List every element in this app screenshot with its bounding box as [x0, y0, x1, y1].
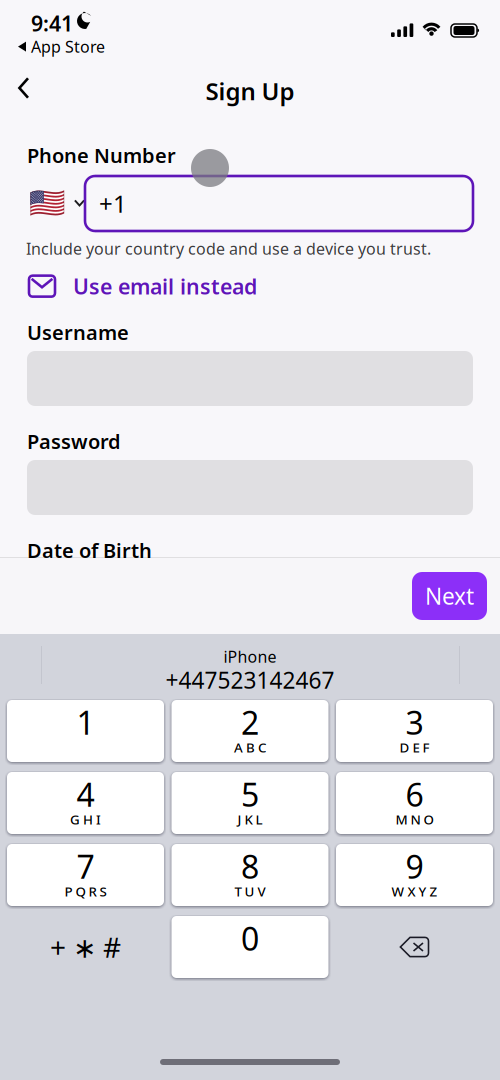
staticText: 2 [241, 701, 259, 743]
staticText: 8 [241, 845, 259, 887]
staticText: A B C [234, 738, 266, 756]
button[interactable]: Select country code [29, 191, 85, 215]
button[interactable]: 4 [7, 772, 164, 834]
staticText: iPhone [223, 646, 276, 667]
button[interactable]: 1 [7, 700, 164, 762]
staticText: + ∗ # [50, 928, 121, 966]
staticText: M N O [395, 810, 433, 828]
button[interactable]: 8 [171, 844, 328, 906]
button[interactable]: Phone number [85, 176, 473, 231]
staticText: Username [27, 319, 129, 346]
staticText: Next [425, 581, 474, 611]
button[interactable]: Back to App Store [18, 36, 105, 57]
button[interactable]: 0 [171, 916, 328, 978]
staticText: 3 [405, 701, 423, 743]
button[interactable]: Delete [336, 916, 493, 978]
button[interactable]: 6 [336, 772, 493, 834]
staticText: +447523142467 [165, 665, 334, 695]
staticText: 5 [241, 773, 259, 815]
staticText: 0 [241, 917, 259, 959]
staticText: Password [27, 428, 121, 455]
staticText: 7 [76, 845, 94, 887]
button[interactable]: 9 [336, 844, 493, 906]
staticText: 9 [405, 845, 423, 887]
button[interactable]: Back [6, 65, 42, 111]
staticText: 6 [405, 773, 423, 815]
staticText: Include your country code and use a devi… [26, 238, 431, 259]
staticText: 9:41 [31, 9, 73, 37]
staticText: J K L [237, 810, 262, 828]
staticText: Date of Birth [27, 537, 152, 564]
button[interactable]: 5 [171, 772, 328, 834]
staticText: T U V [234, 882, 265, 900]
button[interactable]: 7 [7, 844, 164, 906]
button[interactable]: Symbols [7, 916, 164, 978]
button[interactable]: Use email instead [29, 272, 257, 300]
staticText: Use email instead [73, 272, 257, 300]
staticText: +1 [99, 188, 127, 219]
staticText: 🇺🇸 [29, 186, 66, 220]
staticText: Phone Number [27, 142, 176, 169]
button[interactable]: Next [412, 572, 487, 620]
staticText: W X Y Z [391, 882, 437, 900]
button[interactable]: 3 [336, 700, 493, 762]
staticText: G H I [70, 810, 101, 828]
staticText: P Q R S [64, 882, 106, 900]
staticText: Sign Up [205, 75, 294, 107]
button[interactable]: 2 [171, 700, 328, 762]
staticText: 1 [76, 701, 94, 743]
staticText: D E F [399, 738, 429, 756]
staticText: 4 [76, 773, 94, 815]
staticText: App Store [31, 36, 105, 57]
